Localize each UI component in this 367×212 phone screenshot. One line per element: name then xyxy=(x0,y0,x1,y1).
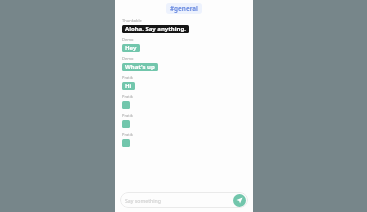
staticText: #general xyxy=(170,4,198,13)
button[interactable] xyxy=(122,139,130,147)
button[interactable] xyxy=(122,120,130,128)
staticText: Hey xyxy=(125,44,137,52)
staticText: Say something xyxy=(125,197,233,204)
staticText: Pratik xyxy=(122,113,133,118)
staticText: Pratik xyxy=(122,75,133,80)
button[interactable]: Say something xyxy=(120,192,248,208)
button[interactable]: Send xyxy=(233,194,246,207)
button[interactable]: What's up xyxy=(122,63,158,71)
button[interactable] xyxy=(122,101,130,109)
staticText: Pratik xyxy=(122,132,133,137)
staticText: Aloha. Say anything. xyxy=(125,25,186,33)
button[interactable]: Aloha. Say anything. xyxy=(122,25,189,33)
button[interactable]: #general xyxy=(166,3,202,14)
staticText: Demo xyxy=(122,56,134,61)
staticText: Hi xyxy=(125,82,132,90)
staticText: What's up xyxy=(125,63,155,71)
staticText: Pratik xyxy=(122,94,133,99)
staticText: Demo xyxy=(122,37,134,42)
button[interactable]: Hey xyxy=(122,44,140,52)
staticText: Thunkable xyxy=(122,18,142,23)
button[interactable]: Hi xyxy=(122,82,135,90)
